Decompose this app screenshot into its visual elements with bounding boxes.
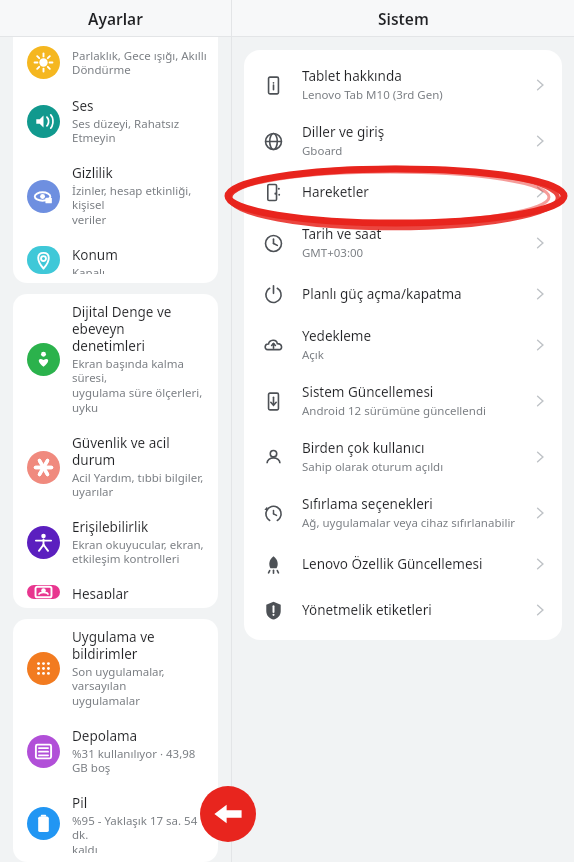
button[interactable]: Konum — [13, 237, 218, 283]
button[interactable]: Sıfırlama seçenekleri — [244, 485, 562, 541]
staticText: Kapalı — [72, 265, 106, 274]
staticText: Tablet hakkında — [302, 67, 402, 85]
staticText: Gboard — [302, 143, 343, 159]
button[interactable]: Yönetmelik etiketleri — [244, 587, 562, 633]
button[interactable]: Pil — [13, 785, 218, 862]
staticText: Lenovo Tab M10 (3rd Gen) — [302, 87, 443, 103]
button[interactable]: Ses — [13, 88, 218, 155]
staticText: Android 12 sürümüne güncellendi — [302, 403, 486, 419]
staticText: Sahip olarak oturum açıldı — [302, 459, 444, 475]
staticText: Ses düzeyi, Rahatsız Etmeyin — [72, 116, 208, 146]
button[interactable]: Diller ve giriş — [244, 113, 562, 169]
staticText: Ayarlar — [88, 8, 143, 29]
button[interactable]: Parlaklık, Gece ışığı, Akıllı Döndürme — [13, 37, 218, 88]
staticText: Ekran başında kalma süresi, uygulama sür… — [72, 356, 208, 416]
button[interactable]: Tablet hakkında — [244, 57, 562, 113]
staticText: Yönetmelik etiketleri — [302, 601, 432, 619]
staticText: Ekran okuyucular, ekran, etkileşim kontr… — [72, 537, 204, 567]
staticText: Dijital Denge ve ebeveyn denetimleri — [72, 303, 208, 355]
staticText: Tarih ve saat — [302, 225, 382, 243]
button[interactable]: Hareketler — [244, 169, 562, 215]
staticText: Diller ve giriş — [302, 123, 385, 141]
button[interactable]: Depolama — [13, 718, 218, 785]
staticText: Konum — [72, 246, 118, 264]
button[interactable]: Sistem Güncellemesi — [244, 373, 562, 429]
button[interactable]: Lenovo Özellik Güncellemesi — [244, 541, 562, 587]
button[interactable]: Hesaplar — [13, 576, 218, 608]
staticText: Ağ, uygulamalar veya cihaz sıfırlanabili… — [302, 515, 516, 531]
button[interactable]: Uygulama ve bildirimler — [13, 619, 218, 718]
staticText: Planlı güç açma/kapatma — [302, 285, 462, 303]
button[interactable]: Tarih ve saat — [244, 215, 562, 271]
staticText: Sistem Güncellemesi — [302, 383, 434, 401]
staticText: Birden çok kullanıcı — [302, 439, 425, 457]
button[interactable]: Gizlilik — [13, 155, 218, 237]
staticText: Açık — [302, 347, 324, 363]
staticText: %31 kullanılıyor · 43,98 GB boş — [72, 746, 208, 776]
staticText: İzinler, hesap etkinliği, kişisel verile… — [72, 183, 208, 228]
staticText: Parlaklık, Gece ışığı, Akıllı Döndürme — [72, 48, 207, 78]
staticText: %95 - Yaklaşık 17 sa. 54 dk. kaldı — [72, 813, 208, 853]
staticText: Acil Yardım, tıbbi bilgiler, uyarılar — [72, 470, 204, 500]
staticText: Son uygulamalar, varsayılan uygulamalar — [72, 664, 208, 709]
staticText: Erişilebilirlik — [72, 518, 149, 536]
staticText: Ses — [72, 97, 94, 115]
staticText: Lenovo Özellik Güncellemesi — [302, 555, 483, 573]
staticText: Yedekleme — [302, 327, 372, 345]
staticText: Depolama — [72, 727, 138, 745]
button[interactable]: Dijital Denge ve ebeveyn denetimleri — [13, 294, 218, 425]
staticText: Pil — [72, 794, 88, 812]
staticText: Hareketler — [302, 183, 369, 201]
button[interactable]: Erişilebilirlik — [13, 509, 218, 576]
staticText: Hesaplar — [72, 585, 129, 599]
button[interactable]: Planlı güç açma/kapatma — [244, 271, 562, 317]
staticText: Gizlilik — [72, 164, 113, 182]
button[interactable]: Back — [200, 786, 256, 842]
staticText: Sıfırlama seçenekleri — [302, 495, 433, 513]
staticText: Güvenlik ve acil durum — [72, 434, 208, 469]
staticText: GMT+03:00 — [302, 245, 364, 261]
button[interactable]: Güvenlik ve acil durum — [13, 425, 218, 509]
staticText: Sistem — [378, 8, 429, 29]
button[interactable]: Yedekleme — [244, 317, 562, 373]
staticText: Uygulama ve bildirimler — [72, 628, 208, 663]
button[interactable]: Birden çok kullanıcı — [244, 429, 562, 485]
